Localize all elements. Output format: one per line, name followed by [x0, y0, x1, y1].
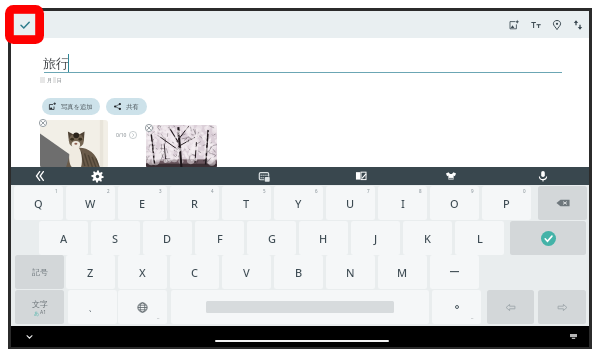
button[interactable]: L: [455, 221, 504, 255]
button[interactable]: Hide keyboard: [20, 328, 38, 346]
button[interactable]: Collapse toolbar: [29, 167, 50, 185]
staticText: X: [139, 265, 146, 280]
button[interactable]: Move cursor left: [487, 290, 534, 324]
staticText: あ: [34, 310, 40, 316]
staticText: 共有: [126, 103, 139, 111]
staticText: 3: [159, 188, 162, 194]
staticText: E: [139, 196, 146, 211]
button[interactable]: Voice input: [532, 167, 553, 185]
button[interactable]: Move cursor right: [538, 290, 586, 324]
staticText: O: [450, 196, 459, 211]
staticText: I: [401, 196, 405, 211]
staticText: 5: [263, 188, 266, 194]
button[interactable]: N: [326, 255, 375, 289]
button[interactable]: 0: [482, 186, 531, 220]
button[interactable]: M: [378, 255, 427, 289]
staticText: U: [346, 196, 355, 211]
staticText: P: [503, 196, 510, 211]
staticText: 写真を追加: [61, 103, 93, 111]
staticText: K: [424, 231, 431, 246]
button[interactable]: 月: [40, 77, 62, 83]
staticText: J: [374, 231, 378, 246]
button[interactable]: 1: [14, 186, 63, 220]
staticText: 7: [367, 188, 370, 194]
button[interactable]: B: [274, 255, 323, 289]
staticText: D: [163, 231, 172, 246]
staticText: 日: [57, 77, 62, 83]
button[interactable]: D: [143, 221, 192, 255]
button[interactable]: Reorder: [567, 11, 588, 38]
button[interactable]: Z: [66, 255, 115, 289]
staticText: 文字: [32, 299, 48, 309]
button[interactable]: _: [432, 290, 481, 324]
button[interactable]: Save note: [5, 5, 44, 44]
button[interactable]: 8: [378, 186, 427, 220]
staticText: 0: [523, 188, 526, 194]
staticText: Q: [34, 196, 43, 211]
staticText: 月: [47, 77, 52, 83]
button[interactable]: X: [118, 255, 167, 289]
staticText: C: [191, 265, 198, 280]
button[interactable]: 写真を追加: [42, 98, 100, 115]
staticText: Z: [87, 265, 94, 280]
button[interactable]: Remove photo: [38, 118, 47, 127]
button[interactable]: S: [91, 221, 140, 255]
button[interactable]: C: [170, 255, 219, 289]
staticText: S: [112, 231, 119, 246]
staticText: 1: [55, 188, 58, 194]
staticText: A: [60, 231, 68, 246]
button[interactable]: Location: [546, 11, 567, 38]
button[interactable]: 文字: [15, 290, 64, 324]
staticText: M: [397, 265, 408, 280]
button[interactable]: Remove photo: [144, 123, 153, 132]
button[interactable]: 9: [430, 186, 479, 220]
button[interactable]: Add image: [503, 11, 524, 38]
staticText: ー: [449, 265, 460, 279]
button[interactable]: A: [39, 221, 88, 255]
staticText: N: [346, 265, 355, 280]
button[interactable]: 4: [170, 186, 219, 220]
button[interactable]: 3: [118, 186, 167, 220]
staticText: A1: [40, 309, 47, 316]
staticText: B: [295, 265, 303, 280]
staticText: 旅行: [43, 55, 69, 71]
button[interactable]: 5: [222, 186, 271, 220]
button[interactable]: Enter: [510, 221, 586, 255]
button[interactable]: Backspace: [538, 186, 587, 220]
button[interactable]: V: [222, 255, 271, 289]
button[interactable]: 記号: [15, 255, 64, 289]
staticText: 6: [315, 188, 318, 194]
staticText: Y: [295, 196, 302, 211]
staticText: 2: [107, 188, 110, 194]
staticText: H: [319, 231, 328, 246]
button[interactable]: 、: [68, 290, 117, 324]
staticText: L: [477, 231, 483, 246]
staticText: W: [85, 196, 96, 211]
button[interactable]: F: [195, 221, 244, 255]
button[interactable]: Text size: [525, 11, 546, 38]
staticText: 0/10: [116, 132, 127, 139]
button[interactable]: 7: [326, 186, 375, 220]
button[interactable]: G: [247, 221, 296, 255]
button[interactable]: Space: [171, 290, 429, 324]
staticText: R: [191, 196, 198, 211]
button[interactable]: Switch language: [118, 290, 167, 324]
staticText: 9: [471, 188, 474, 194]
button[interactable]: H: [299, 221, 348, 255]
button[interactable]: K: [403, 221, 452, 255]
button[interactable]: 6: [274, 186, 323, 220]
button[interactable]: Clipboard: [350, 167, 371, 185]
staticText: T: [243, 196, 250, 211]
staticText: 8: [419, 188, 422, 194]
button[interactable]: Settings: [87, 167, 108, 185]
button[interactable]: Keyboard layout: [254, 167, 275, 185]
staticText: V: [243, 265, 250, 280]
button[interactable]: ー: [430, 255, 479, 289]
button[interactable]: 2: [66, 186, 115, 220]
button[interactable]: Keyboard: [564, 327, 582, 345]
button[interactable]: J: [351, 221, 400, 255]
staticText: _: [157, 313, 160, 320]
staticText: 4: [211, 188, 214, 194]
button[interactable]: 共有: [106, 98, 147, 115]
button[interactable]: Stickers: [440, 167, 461, 185]
